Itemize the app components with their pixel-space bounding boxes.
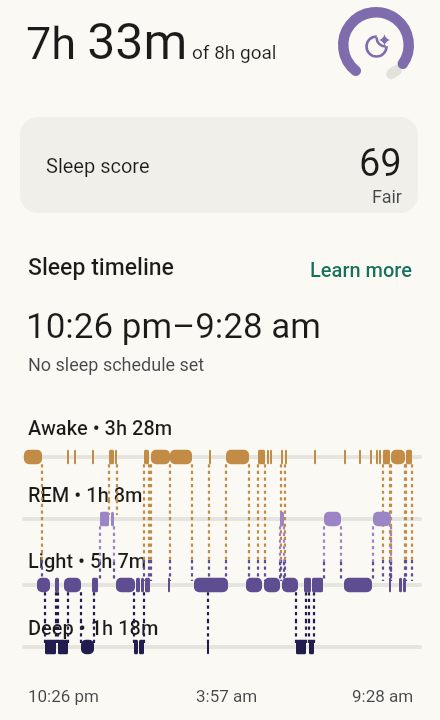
button[interactable]: Learn more [310, 258, 412, 281]
staticText: Light • 5h 7m [28, 549, 147, 572]
staticText: 9:28 am [352, 686, 414, 706]
staticText: 3:57 am [196, 686, 258, 706]
staticText: REM • 1h 8m [28, 483, 143, 506]
staticText: Sleep score [46, 154, 150, 177]
staticText: Awake • 3h 28m [28, 416, 173, 439]
staticText: 69 [359, 141, 402, 186]
staticText: 10:26 pm [28, 686, 100, 706]
staticText: No sleep schedule set [28, 354, 205, 375]
staticText: Sleep timeline [28, 254, 174, 281]
staticText: Fair [372, 186, 402, 207]
staticText: 10:26 pm–9:28 am [26, 306, 322, 347]
staticText: Deep • 1h 18m [28, 616, 159, 639]
staticText: 7h 33m of 8h goal [26, 13, 277, 72]
button[interactable]: Sleep score [20, 117, 418, 213]
